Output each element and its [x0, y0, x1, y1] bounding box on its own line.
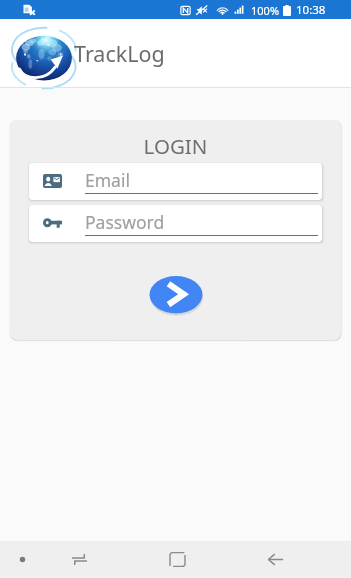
button[interactable]: Recent apps — [48, 541, 110, 578]
staticText: Password — [85, 210, 165, 234]
button[interactable]: Back — [236, 541, 314, 578]
staticText: LOGIN — [10, 132, 341, 160]
button[interactable]: Email — [29, 163, 322, 200]
button[interactable]: Menu — [0, 541, 44, 578]
button[interactable]: Sign in — [148, 275, 204, 315]
button[interactable]: Home — [140, 541, 214, 578]
staticText: TrackLog — [74, 39, 165, 68]
staticText: 10:38 — [296, 2, 326, 18]
button[interactable]: Password — [29, 205, 322, 242]
staticText: Email — [85, 168, 130, 192]
staticText: 100% — [251, 3, 280, 18]
